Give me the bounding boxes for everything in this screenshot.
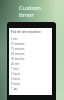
staticText: 1 hour [11,67,20,71]
button[interactable]: 2 hours [9,71,52,76]
staticText: 2 hours [11,72,21,76]
staticText: 8 hours [11,82,21,86]
staticText: Custom timer [19,4,41,19]
button[interactable]: 20 minutes [9,51,52,56]
staticText: 5 min [11,37,18,41]
button[interactable]: 1 hour [9,66,52,71]
staticText: 45 min [11,62,20,66]
staticText: Pick the timer duration [11,30,41,34]
staticText: 1 day [11,87,18,91]
staticText: 4 hours [11,77,21,81]
staticText: 15 minutes [11,47,25,51]
button[interactable]: 15 minutes [9,46,52,51]
button[interactable]: 5 min [9,36,52,41]
button[interactable]: 30 minutes [9,56,52,61]
staticText: 20 minutes [11,52,25,56]
button[interactable]: 8 hours [9,81,52,86]
staticText: 10 minutes [11,42,25,46]
staticText: 30 minutes [11,57,25,61]
button[interactable]: 4 hours [9,76,52,81]
button[interactable]: 1 day [9,86,52,91]
button[interactable]: 10 minutes [9,41,52,46]
button[interactable]: 45 min [9,61,52,66]
